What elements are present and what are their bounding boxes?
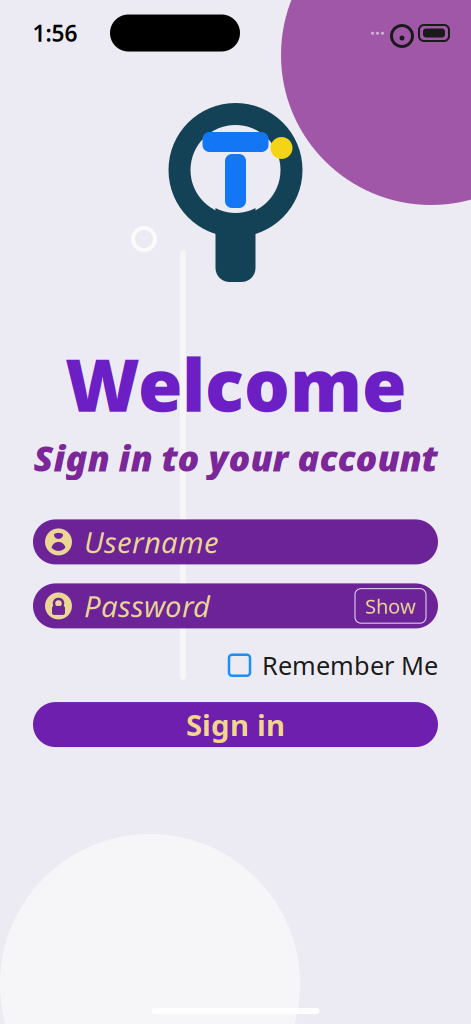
- button[interactable]: Password: [33, 583, 438, 628]
- staticText: Sign in to your account: [33, 434, 437, 481]
- button[interactable]: Username: [33, 519, 438, 564]
- staticText: Welcome: [65, 336, 406, 432]
- staticText: Show: [365, 593, 416, 619]
- button[interactable]: Remember Me: [229, 642, 438, 688]
- button[interactable]: Sign in: [33, 702, 438, 747]
- staticText: Password: [84, 586, 210, 625]
- staticText: ···: [370, 21, 385, 44]
- staticText: 1:56: [32, 18, 77, 48]
- staticText: Username: [84, 522, 219, 561]
- staticText: Remember Me: [262, 648, 438, 682]
- staticText: Sign in: [186, 705, 285, 744]
